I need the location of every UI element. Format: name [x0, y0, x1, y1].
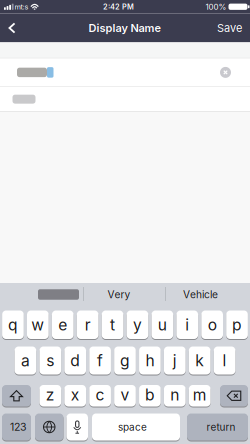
button[interactable]: l: [214, 346, 235, 374]
button[interactable]: m: [189, 385, 211, 406]
staticText: a: [21, 351, 30, 370]
staticText: n: [170, 385, 179, 404]
staticText: b: [145, 385, 155, 404]
staticText: p: [232, 315, 242, 334]
button[interactable]: [5, 22, 19, 34]
button[interactable]: v: [114, 385, 136, 406]
button[interactable]: [66, 413, 88, 440]
staticText: return: [206, 421, 235, 433]
staticText: t: [110, 315, 115, 334]
staticText: Save: [217, 21, 242, 35]
button[interactable]: [0, 87, 250, 111]
staticText: z: [46, 385, 55, 404]
staticText: Very: [107, 288, 130, 301]
staticText: d: [70, 351, 80, 370]
staticText: h: [145, 351, 154, 370]
staticText: v: [120, 385, 129, 404]
button[interactable]: q: [2, 310, 24, 339]
staticText: u: [158, 315, 167, 334]
staticText: w: [31, 315, 44, 334]
button[interactable]: e: [52, 310, 74, 339]
staticText: j: [173, 351, 177, 370]
staticText: q: [8, 315, 18, 334]
button[interactable]: x: [64, 385, 86, 406]
staticText: i: [185, 315, 189, 334]
staticText: g: [120, 351, 130, 370]
staticText: Display Name: [88, 21, 161, 35]
staticText: m: [193, 385, 207, 404]
staticText: Vehicle: [183, 288, 218, 301]
staticText: e: [58, 315, 67, 334]
button[interactable]: return: [187, 413, 248, 440]
button[interactable]: Very: [84, 283, 154, 306]
button[interactable]: g: [114, 346, 136, 374]
button[interactable]: p: [226, 310, 248, 339]
staticText: o: [208, 315, 217, 334]
button[interactable]: b: [139, 385, 161, 406]
staticText: y: [133, 315, 142, 334]
button[interactable]: y: [127, 310, 148, 339]
button[interactable]: u: [151, 310, 173, 339]
button[interactable]: z: [39, 385, 61, 406]
staticText: space: [118, 421, 147, 433]
button[interactable]: n: [164, 385, 186, 406]
button[interactable]: f: [89, 346, 111, 374]
button[interactable]: Save: [217, 21, 242, 35]
button[interactable]: j: [164, 346, 186, 374]
button[interactable]: r: [77, 310, 98, 339]
staticText: f: [97, 351, 103, 370]
staticText: s: [46, 351, 54, 370]
button[interactable]: i: [176, 310, 198, 339]
button[interactable]: [0, 58, 250, 86]
button[interactable]: h: [139, 346, 161, 374]
staticText: k: [195, 351, 204, 370]
button[interactable]: s: [39, 346, 61, 374]
button[interactable]: [18, 283, 98, 306]
staticText: x: [71, 385, 80, 404]
button[interactable]: [35, 413, 63, 440]
button[interactable]: o: [201, 310, 223, 339]
staticText: r: [85, 315, 91, 334]
staticText: 2:42 PM: [103, 2, 134, 11]
staticText: l: [223, 351, 227, 370]
button[interactable]: k: [189, 346, 211, 374]
button[interactable]: c: [89, 385, 111, 406]
button[interactable]: [2, 385, 31, 406]
staticText: mt:s: [15, 2, 29, 11]
staticText: 100%: [205, 2, 226, 12]
button[interactable]: [220, 67, 231, 78]
button[interactable]: Vehicle: [162, 283, 238, 306]
button[interactable]: w: [27, 310, 49, 339]
button[interactable]: space: [92, 413, 180, 440]
button[interactable]: d: [64, 346, 86, 374]
button[interactable]: [220, 385, 248, 406]
staticText: c: [96, 385, 105, 404]
button[interactable]: t: [102, 310, 123, 339]
button[interactable]: 123: [2, 413, 31, 440]
staticText: 123: [10, 421, 27, 433]
button[interactable]: a: [15, 346, 36, 374]
